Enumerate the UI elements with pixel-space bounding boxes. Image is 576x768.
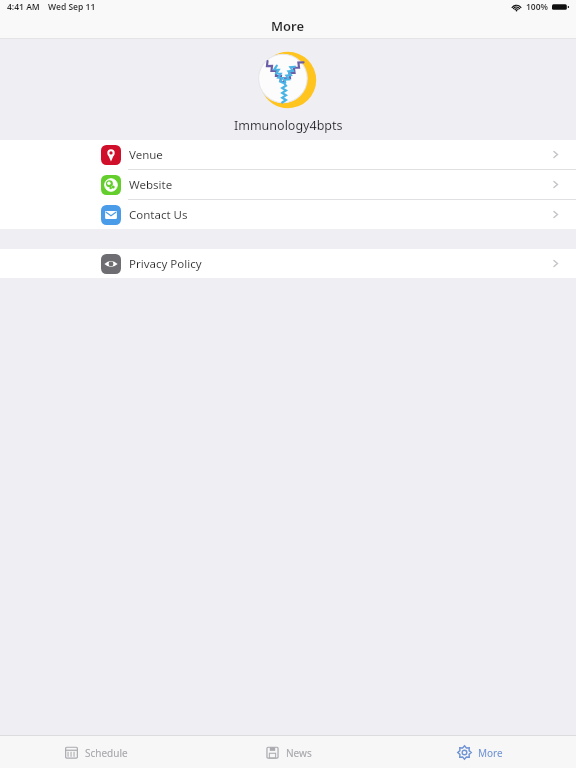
staticText: 4:41 AM	[7, 1, 40, 13]
button[interactable]: Schedule	[0, 736, 192, 768]
staticText: Privacy Policy	[129, 256, 202, 272]
staticText: Contact Us	[129, 207, 188, 223]
staticText: Venue	[129, 147, 163, 163]
button[interactable]: Website	[0, 170, 576, 199]
button[interactable]: News	[192, 736, 384, 768]
staticText: More	[478, 746, 503, 760]
button[interactable]: Contact Us	[0, 200, 576, 229]
staticText: Immunology4bpts	[234, 117, 343, 134]
staticText: Website	[129, 177, 173, 193]
button[interactable]: Venue	[0, 140, 576, 169]
staticText: News	[286, 746, 312, 760]
button[interactable]: More	[384, 736, 576, 768]
button[interactable]: Privacy Policy	[0, 249, 576, 278]
staticText: 100%	[526, 1, 549, 13]
staticText: Schedule	[85, 746, 128, 760]
staticText: More	[271, 17, 305, 35]
staticText: Wed Sep 11	[48, 1, 96, 13]
